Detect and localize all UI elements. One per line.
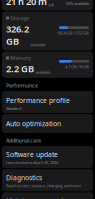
staticText: 50% available xyxy=(66,1,89,6)
staticText: Memory xyxy=(10,54,31,61)
staticText: 183.8 GB / 512 GB xyxy=(57,30,89,36)
staticText: 21 h 20 m xyxy=(6,0,47,7)
staticText: Performance profile xyxy=(6,96,70,105)
staticText: Storage xyxy=(10,14,29,22)
staticText: Standard xyxy=(6,106,21,111)
button[interactable]: Memory xyxy=(2,51,93,78)
staticText: Software update xyxy=(6,150,58,159)
staticText: available xyxy=(35,70,50,75)
staticText: left xyxy=(48,2,53,7)
staticText: 2.2 GB xyxy=(6,62,34,75)
staticText: 326.2 GB xyxy=(6,23,29,47)
button[interactable]: 21 h 20 m xyxy=(2,0,93,10)
button[interactable]: Software update xyxy=(2,146,93,168)
staticText: Auto optimization xyxy=(6,119,61,128)
staticText: Touch screen, sensors, charging, and mor… xyxy=(6,183,81,188)
staticText: Maintenance mode xyxy=(6,196,67,199)
staticText: Diagnostics xyxy=(6,173,42,182)
button[interactable]: Maintenance mode xyxy=(2,192,93,199)
staticText: Last checked on April 29, 2024 xyxy=(6,160,58,165)
button[interactable]: Auto optimization xyxy=(2,114,93,133)
staticText: Additional care xyxy=(6,137,41,144)
button[interactable]: Storage xyxy=(2,11,93,50)
staticText: available xyxy=(30,42,45,47)
staticText: 4.7 GB / 8 GB xyxy=(65,64,89,69)
button[interactable]: Performance profile xyxy=(2,91,93,113)
button[interactable]: Diagnostics xyxy=(2,169,93,191)
staticText: Performance xyxy=(6,82,38,89)
